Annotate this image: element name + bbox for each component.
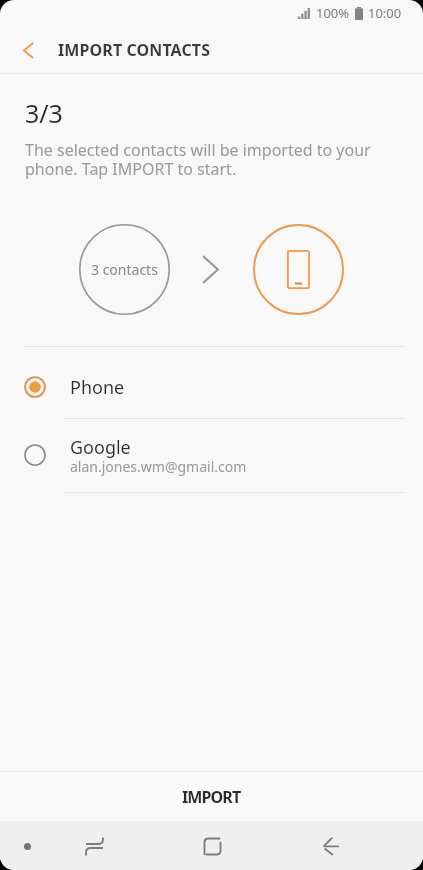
- button[interactable]: Google: [0, 419, 423, 492]
- button[interactable]: Back: [0, 26, 54, 74]
- staticText: 10:00: [368, 4, 402, 22]
- staticText: The selected contacts will be imported t…: [25, 139, 423, 180]
- staticText: 3 contacts: [91, 260, 158, 279]
- staticText: Google: [70, 435, 131, 460]
- button[interactable]: IMPORT: [0, 772, 423, 821]
- staticText: IMPORT: [182, 786, 241, 808]
- staticText: 100%: [316, 4, 350, 22]
- staticText: alan.jones.wm@gmail.com: [70, 457, 247, 476]
- staticText: Phone: [70, 375, 125, 400]
- button[interactable]: Recent apps: [62, 825, 126, 867]
- button[interactable]: Phone: [0, 347, 423, 418]
- button[interactable]: Home: [180, 825, 244, 867]
- staticText: IMPORT CONTACTS: [58, 39, 211, 61]
- staticText: 3/3: [25, 96, 63, 130]
- button[interactable]: Back: [299, 825, 363, 867]
